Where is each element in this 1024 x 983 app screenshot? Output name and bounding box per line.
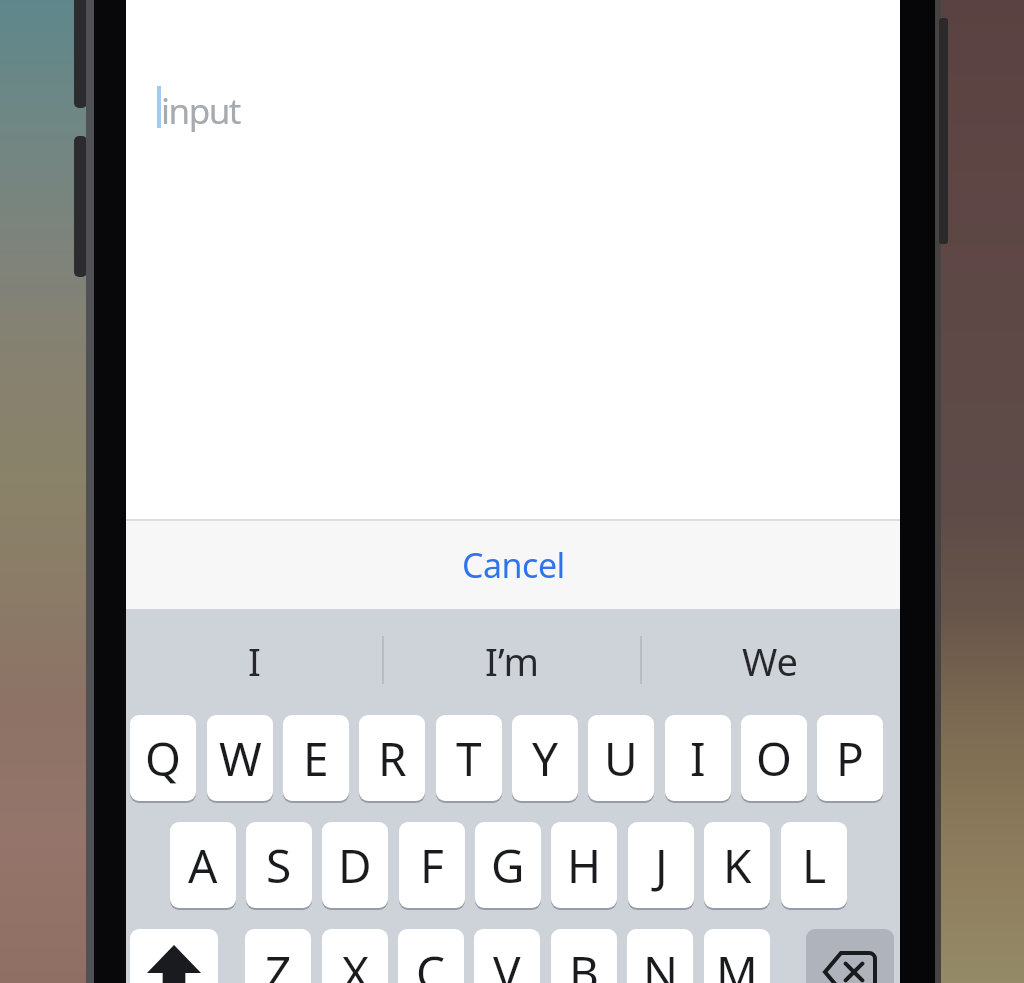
button[interactable]: U [588, 715, 654, 801]
button[interactable]: Y [512, 715, 578, 801]
button[interactable]: R [359, 715, 425, 801]
button[interactable]: C [398, 929, 464, 983]
button[interactable]: T [436, 715, 502, 801]
staticText: X [342, 941, 369, 983]
staticText: I’m [485, 635, 539, 687]
staticText: P [836, 727, 864, 790]
button[interactable]: K [704, 822, 770, 908]
staticText: T [456, 727, 482, 790]
button[interactable]: G [475, 822, 541, 908]
button[interactable]: Cancel [126, 521, 900, 609]
button[interactable]: P [817, 715, 883, 801]
staticText: Cancel [462, 542, 565, 588]
button[interactable]: N [627, 929, 693, 983]
button[interactable]: Q [130, 715, 196, 801]
staticText: Y [532, 727, 559, 790]
button[interactable]: L [781, 822, 847, 908]
staticText: J [655, 834, 668, 897]
staticText: H [567, 834, 602, 897]
staticText: C [416, 941, 446, 983]
staticText: D [338, 834, 372, 897]
button[interactable]: F [399, 822, 465, 908]
staticText: M [716, 941, 758, 983]
staticText: I [248, 635, 261, 687]
button[interactable]: I [665, 715, 731, 801]
button[interactable]: D [322, 822, 388, 908]
button[interactable] [806, 929, 894, 983]
button[interactable]: X [322, 929, 388, 983]
staticText: U [604, 727, 638, 790]
staticText: G [491, 834, 525, 897]
button[interactable]: O [741, 715, 807, 801]
staticText: Z [265, 941, 292, 983]
staticText: F [420, 834, 444, 897]
staticText: L [802, 834, 827, 897]
staticText: R [378, 727, 407, 790]
staticText: W [219, 727, 262, 790]
button[interactable]: J [628, 822, 694, 908]
staticText: K [723, 834, 752, 897]
staticText: We [742, 635, 799, 687]
staticText: A [188, 834, 218, 897]
button[interactable]: A [170, 822, 236, 908]
staticText: input [161, 87, 240, 135]
staticText: I [690, 727, 706, 790]
button[interactable]: H [551, 822, 617, 908]
button[interactable]: We [642, 633, 898, 689]
button[interactable]: I’m [384, 633, 640, 689]
button[interactable]: Z [245, 929, 311, 983]
button[interactable]: V [474, 929, 540, 983]
staticText: Q [145, 727, 181, 790]
button[interactable] [130, 929, 218, 983]
staticText: O [756, 727, 792, 790]
staticText: E [303, 727, 329, 790]
button[interactable]: I [126, 633, 382, 689]
button[interactable]: M [704, 929, 770, 983]
button[interactable]: W [207, 715, 273, 801]
button[interactable]: E [283, 715, 349, 801]
staticText: N [643, 941, 678, 983]
staticText: B [569, 941, 599, 983]
staticText: S [266, 834, 292, 897]
button[interactable]: B [551, 929, 617, 983]
button[interactable]: S [246, 822, 312, 908]
staticText: V [493, 941, 521, 983]
